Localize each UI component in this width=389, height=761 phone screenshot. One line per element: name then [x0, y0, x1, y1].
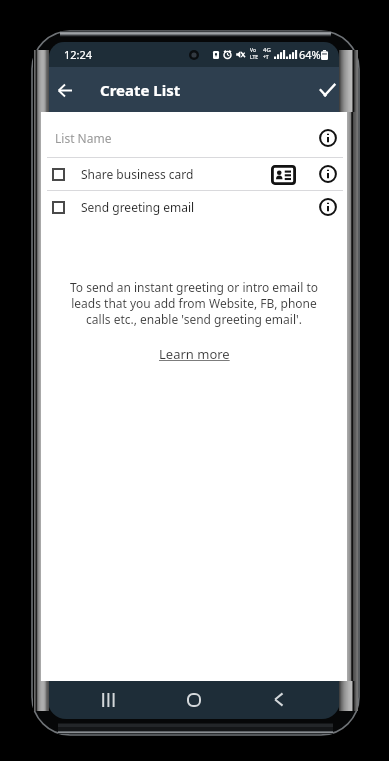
staticText: 12:24 — [64, 47, 93, 62]
button[interactable]: Business card — [270, 164, 296, 185]
button[interactable]: Learn more — [155, 341, 234, 367]
staticText: Create List — [100, 80, 181, 100]
staticText: LTE — [250, 54, 259, 61]
button[interactable]: Info — [315, 161, 341, 187]
staticText: 64% — [299, 47, 321, 62]
staticText: Send greeting email — [81, 199, 195, 215]
staticText: List Name — [55, 130, 112, 146]
button[interactable]: Info — [315, 125, 341, 151]
button[interactable]: Info — [315, 194, 341, 220]
button[interactable]: Save — [313, 75, 339, 105]
staticText: 4G — [263, 46, 271, 54]
button[interactable]: Send greeting email — [41, 191, 347, 223]
button[interactable]: Share business card — [41, 158, 347, 190]
staticText: Vo — [250, 47, 256, 54]
button[interactable]: Back — [261, 682, 296, 717]
button[interactable]: Recent apps — [91, 682, 126, 717]
staticText: Share business card — [81, 166, 194, 182]
staticText: +T — [263, 54, 269, 61]
staticText: To send an instant greeting or intro ema… — [66, 279, 322, 327]
button[interactable]: Back — [51, 75, 79, 105]
button[interactable]: Home — [176, 682, 211, 717]
